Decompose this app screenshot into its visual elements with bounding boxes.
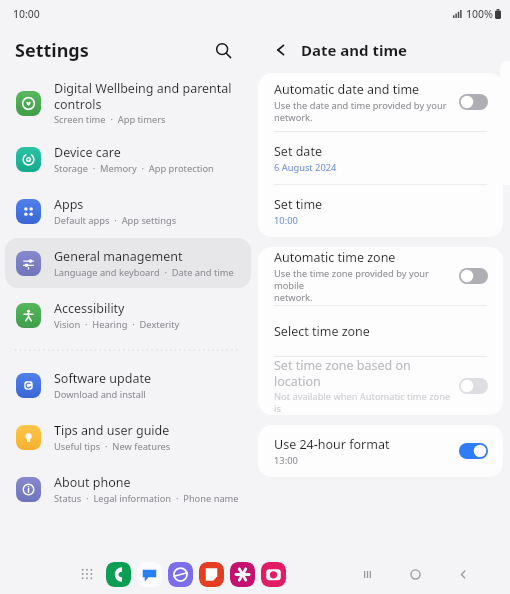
button[interactable]: Off — [459, 378, 488, 394]
staticText: Storage · Memory · App protection — [54, 162, 214, 175]
button[interactable]: Set time zone based on location — [258, 357, 503, 415]
button[interactable]: All apps — [74, 561, 100, 587]
button[interactable]: Device care — [5, 134, 251, 184]
staticText: Vision · Hearing · Dexterity — [54, 318, 180, 331]
button[interactable]: Software update — [5, 360, 251, 410]
staticText: Not available when Automatic time zone i… — [274, 390, 451, 415]
staticText: General management — [54, 248, 183, 265]
staticText: Use the date and time provided by your n… — [274, 99, 447, 124]
staticText: Set date — [274, 143, 322, 160]
staticText: Accessibility — [54, 300, 125, 317]
staticText: Status · Legal information · Phone name — [54, 492, 239, 505]
button[interactable]: Automatic date and time — [258, 73, 503, 131]
button[interactable]: Back — [258, 27, 510, 73]
staticText: Digital Wellbeing and parental controls — [54, 80, 232, 112]
button[interactable]: Notes — [199, 562, 224, 587]
staticText: Screen time · App timers — [54, 113, 166, 126]
button[interactable]: Search — [208, 35, 238, 65]
staticText: 6 August 2024 — [274, 161, 337, 174]
button[interactable]: Internet — [168, 562, 193, 587]
staticText: Settings — [15, 38, 89, 63]
staticText: 10:00 — [13, 7, 40, 21]
button[interactable]: Accessibility — [5, 290, 251, 340]
button[interactable]: About phone — [5, 464, 251, 514]
button[interactable]: Select time zone — [258, 306, 503, 356]
button[interactable]: Off — [459, 268, 488, 284]
staticText: 13:00 — [274, 454, 298, 467]
staticText: Date and time — [301, 40, 408, 60]
staticText: About phone — [54, 474, 131, 491]
staticText: Useful tips · New features — [54, 440, 171, 453]
staticText: Automatic date and time — [274, 81, 420, 98]
button[interactable]: Tips and user guide — [5, 412, 251, 462]
button[interactable]: Use 24-hour format — [258, 425, 503, 477]
button[interactable]: General management — [5, 238, 251, 288]
button[interactable]: Messages — [137, 562, 162, 587]
staticText: Set time zone based on location — [274, 357, 451, 389]
staticText: Tips and user guide — [54, 422, 170, 439]
button[interactable]: Digital Wellbeing and parental controls — [5, 74, 251, 132]
staticText: Software update — [54, 370, 151, 387]
staticText: Language and keyboard · Date and time — [54, 266, 234, 279]
staticText: Set time — [274, 196, 323, 213]
staticText: 100% — [466, 7, 493, 21]
staticText: Default apps · App settings — [54, 214, 177, 227]
staticText: 10:00 — [274, 214, 298, 227]
button[interactable]: Galaxy Store — [230, 562, 255, 587]
staticText: Device care — [54, 144, 121, 161]
button[interactable]: Automatic time zone — [258, 247, 503, 305]
button[interactable]: Recent apps — [354, 561, 380, 587]
staticText: Download and install — [54, 388, 146, 401]
button[interactable]: Set date — [258, 132, 503, 184]
button[interactable]: On — [459, 443, 488, 459]
button[interactable]: Off — [459, 94, 488, 110]
staticText: Automatic time zone — [274, 249, 396, 266]
staticText: Use 24-hour format — [274, 436, 390, 453]
button[interactable]: Phone — [106, 562, 131, 587]
button[interactable]: Set time — [258, 185, 503, 237]
staticText: Use the time zone provided by your mobil… — [274, 267, 451, 304]
button[interactable]: Back — [450, 561, 476, 587]
button[interactable]: Home — [402, 561, 428, 587]
staticText: Apps — [54, 196, 84, 213]
button[interactable]: Apps — [5, 186, 251, 236]
staticText: Select time zone — [274, 323, 370, 340]
button[interactable]: Camera — [261, 562, 286, 587]
